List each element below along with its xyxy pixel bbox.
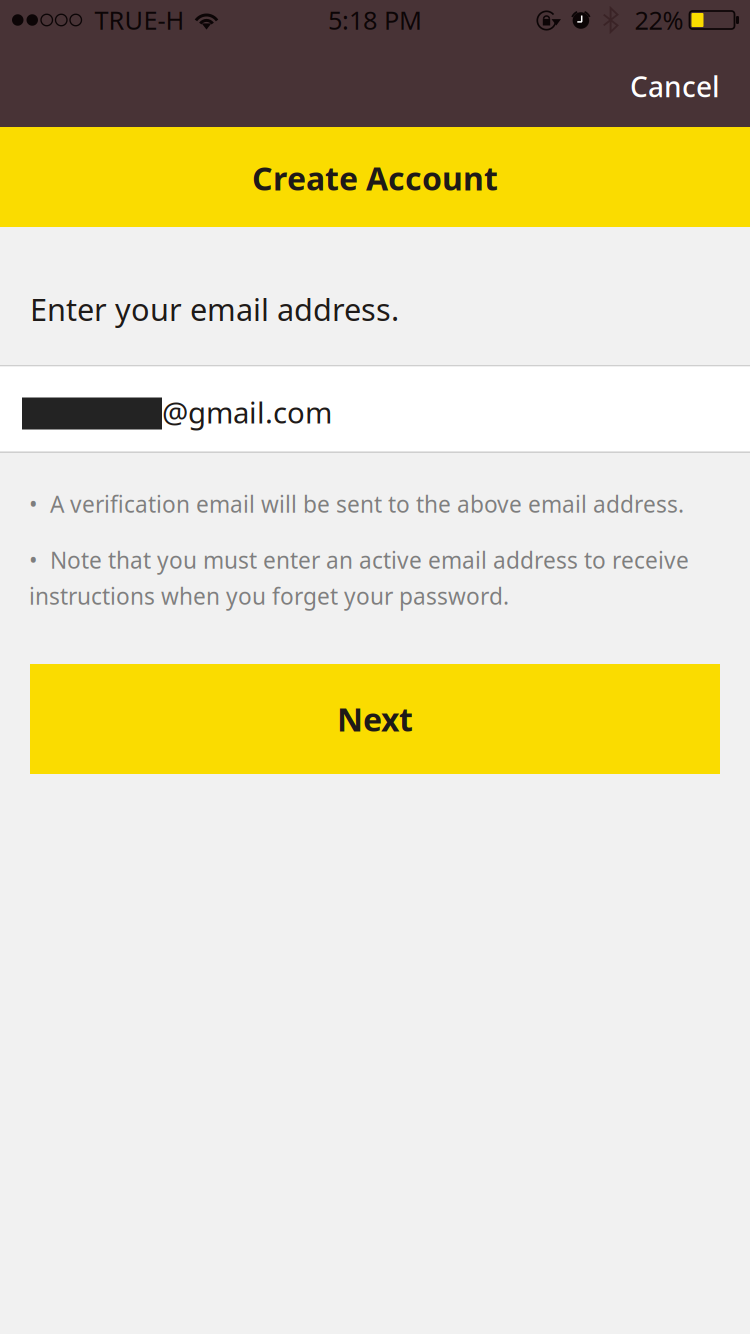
- staticText: Enter your email address.: [30, 289, 399, 329]
- staticText: instructions when you forget your passwo…: [29, 581, 509, 611]
- staticText: 22%: [634, 3, 683, 37]
- staticText: Create Account: [252, 157, 498, 199]
- staticText: TRUE-H: [94, 3, 184, 37]
- staticText: @gmail.com: [162, 392, 332, 431]
- staticText: Next: [337, 698, 413, 740]
- staticText: • Note that you must enter an active ema…: [29, 545, 689, 575]
- staticText: • A verification email will be sent to t…: [29, 489, 684, 519]
- staticText: 5:18 PM: [328, 3, 422, 37]
- button[interactable]: @gmail.com: [0, 366, 750, 451]
- button[interactable]: Cancel: [606, 44, 750, 123]
- button[interactable]: Next: [30, 664, 720, 774]
- staticText: Cancel: [630, 68, 720, 105]
